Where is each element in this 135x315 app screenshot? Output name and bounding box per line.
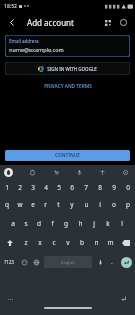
staticText: 7: [84, 183, 88, 192]
button[interactable]: .: [106, 252, 117, 272]
button[interactable]: Backspace: [117, 233, 135, 252]
staticText: h: [78, 219, 83, 228]
button[interactable]: 6: [65, 179, 79, 195]
staticText: e: [31, 200, 35, 209]
staticText: o: [112, 200, 116, 209]
staticText: q: [5, 200, 9, 209]
button[interactable]: SIGN IN WITH GOOGLE: [5, 62, 130, 75]
staticText: 4: [44, 183, 48, 192]
staticText: b: [80, 238, 84, 247]
button[interactable]: 1: [0, 179, 13, 195]
button[interactable]: n: [89, 233, 103, 252]
button[interactable]: k: [101, 214, 115, 233]
staticText: 3: [31, 183, 35, 192]
staticText: x: [38, 238, 42, 247]
staticText: v: [66, 238, 70, 247]
staticText: d: [37, 219, 41, 228]
staticText: 0: [126, 183, 130, 192]
button[interactable]: j: [87, 214, 101, 233]
staticText: j: [93, 219, 95, 228]
staticText: 2: [18, 183, 22, 192]
button[interactable]: Email address: [5, 35, 130, 57]
button[interactable]: Voice input: [74, 167, 84, 177]
button[interactable]: Settings: [120, 167, 130, 177]
staticText: a: [11, 219, 15, 228]
button[interactable]: a: [6, 214, 19, 233]
button[interactable]: More options: [6, 295, 15, 304]
staticText: ?123: [4, 259, 14, 265]
button[interactable]: 4: [39, 179, 52, 195]
button[interactable]: g: [59, 214, 73, 233]
staticText: 1: [5, 183, 9, 192]
staticText: m: [107, 238, 114, 247]
staticText: f: [51, 219, 54, 228]
button[interactable]: z: [19, 233, 33, 252]
button[interactable]: 7: [79, 179, 93, 195]
button[interactable]: Download: [94, 252, 106, 272]
staticText: p: [126, 200, 130, 209]
staticText: t: [57, 200, 60, 209]
button[interactable]: l: [115, 214, 129, 233]
button[interactable]: Stickers: [51, 167, 61, 177]
button[interactable]: v: [61, 233, 75, 252]
staticText: r: [44, 200, 47, 209]
staticText: CONTINUE: [55, 152, 80, 159]
button[interactable]: c: [47, 233, 61, 252]
button[interactable]: 9: [107, 179, 121, 195]
button[interactable]: 0: [121, 179, 135, 195]
staticText: u: [84, 200, 89, 209]
button[interactable]: t: [52, 195, 65, 214]
staticText: 6: [70, 183, 74, 192]
button[interactable]: Clipboard: [27, 167, 37, 177]
button[interactable]: i: [93, 195, 107, 214]
button[interactable]: s: [19, 214, 32, 233]
button[interactable]: Enter: [117, 252, 135, 272]
button[interactable]: y: [65, 195, 79, 214]
staticText: k: [106, 219, 110, 228]
button[interactable]: 3: [26, 179, 39, 195]
staticText: y: [70, 200, 74, 209]
button[interactable]: p: [121, 195, 135, 214]
button[interactable]: Back: [5, 15, 19, 29]
button[interactable]: Translate: [97, 167, 107, 177]
button[interactable]: x: [33, 233, 47, 252]
staticText: w: [17, 200, 23, 209]
button[interactable]: 5: [52, 179, 65, 195]
button[interactable]: PRIVACY AND TERMS: [0, 81, 135, 91]
staticText: n: [94, 238, 99, 247]
button[interactable]: r: [39, 195, 52, 214]
staticText: .: [111, 259, 113, 266]
button[interactable]: q: [0, 195, 13, 214]
button[interactable]: Hide keyboard: [119, 294, 129, 304]
staticText: Add account: [27, 17, 74, 28]
button[interactable]: e: [26, 195, 39, 214]
button[interactable]: u: [79, 195, 93, 214]
button[interactable]: CONTINUE: [5, 150, 130, 161]
button[interactable]: Emoji: [18, 252, 30, 272]
button[interactable]: b: [75, 233, 89, 252]
staticText: 18:52: [4, 3, 17, 10]
staticText: i: [99, 200, 101, 209]
staticText: Email address: [9, 38, 39, 44]
button[interactable]: w: [13, 195, 26, 214]
button[interactable]: h: [73, 214, 87, 233]
button[interactable]: Shift: [0, 233, 19, 252]
button[interactable]: 2: [13, 179, 26, 195]
staticText: g: [64, 219, 68, 228]
button[interactable]: o: [107, 195, 121, 214]
button[interactable]: f: [45, 214, 59, 233]
button[interactable]: Space: [44, 256, 92, 268]
staticText: English: [61, 260, 75, 265]
button[interactable]: Help: [117, 16, 130, 29]
staticText: 5: [57, 183, 61, 192]
button[interactable]: Keyboard assistant: [4, 168, 13, 177]
staticText: s: [24, 219, 28, 228]
button[interactable]: 8: [93, 179, 107, 195]
staticText: SIGN IN WITH GOOGLE: [47, 66, 97, 72]
button[interactable]: Change language: [30, 252, 42, 272]
staticText: name@example.com: [9, 46, 64, 53]
button[interactable]: Scan QR code: [101, 16, 114, 29]
button[interactable]: d: [32, 214, 45, 233]
button[interactable]: ?123: [0, 252, 18, 272]
button[interactable]: m: [103, 233, 117, 252]
